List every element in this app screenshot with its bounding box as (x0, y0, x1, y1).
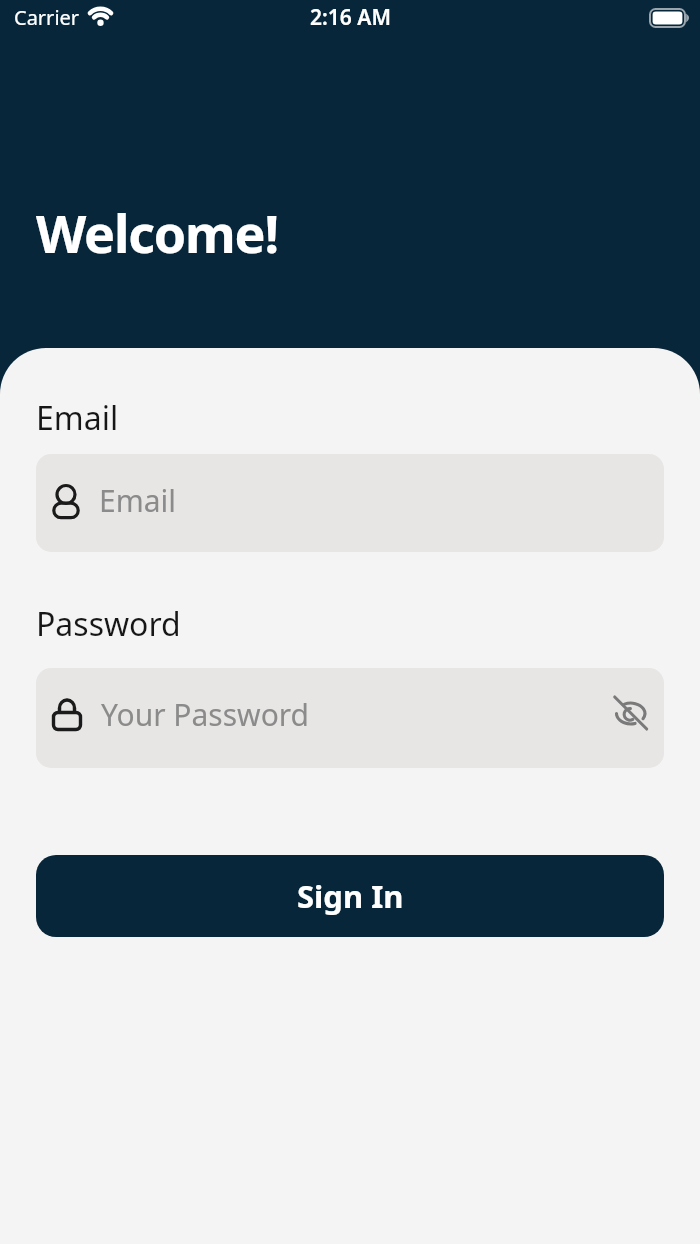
button[interactable] (613, 698, 649, 732)
staticText: Email (99, 480, 177, 521)
staticText: Email (36, 396, 119, 440)
staticText: 2:16 AM (310, 3, 391, 32)
staticText: Sign In (297, 875, 404, 917)
staticText: Welcome! (36, 197, 278, 268)
staticText: Carrier (14, 4, 80, 31)
button[interactable]: Sign In (36, 855, 664, 937)
staticText: Password (36, 602, 181, 646)
button[interactable]: Your Password (36, 668, 664, 768)
staticText: Your Password (101, 694, 310, 735)
button[interactable]: Email (36, 454, 664, 552)
